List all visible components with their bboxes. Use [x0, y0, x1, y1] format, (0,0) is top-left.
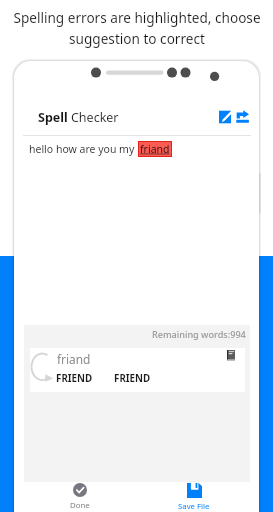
button[interactable]: friand	[30, 348, 245, 392]
staticText: hello how are you my	[29, 142, 138, 156]
button[interactable]: Save File	[164, 482, 224, 512]
staticText: Spelling errors are highlighted, choose …	[13, 8, 261, 48]
staticText: Remaining words:994	[152, 328, 246, 340]
button[interactable]: Edit text	[219, 110, 233, 124]
button[interactable]: friand	[140, 142, 170, 156]
button[interactable]: Spell Checker	[38, 109, 119, 126]
button[interactable]: FRIEND	[56, 372, 93, 385]
button[interactable]: FRIEND	[114, 372, 151, 385]
button[interactable]: Share	[236, 110, 249, 124]
staticText: friand	[57, 351, 91, 367]
staticText: Done	[70, 500, 90, 511]
button[interactable]: Done	[50, 482, 110, 512]
button[interactable]: Dictionary	[227, 350, 235, 361]
staticText: Save File	[178, 501, 210, 512]
staticText: friand	[140, 142, 170, 156]
